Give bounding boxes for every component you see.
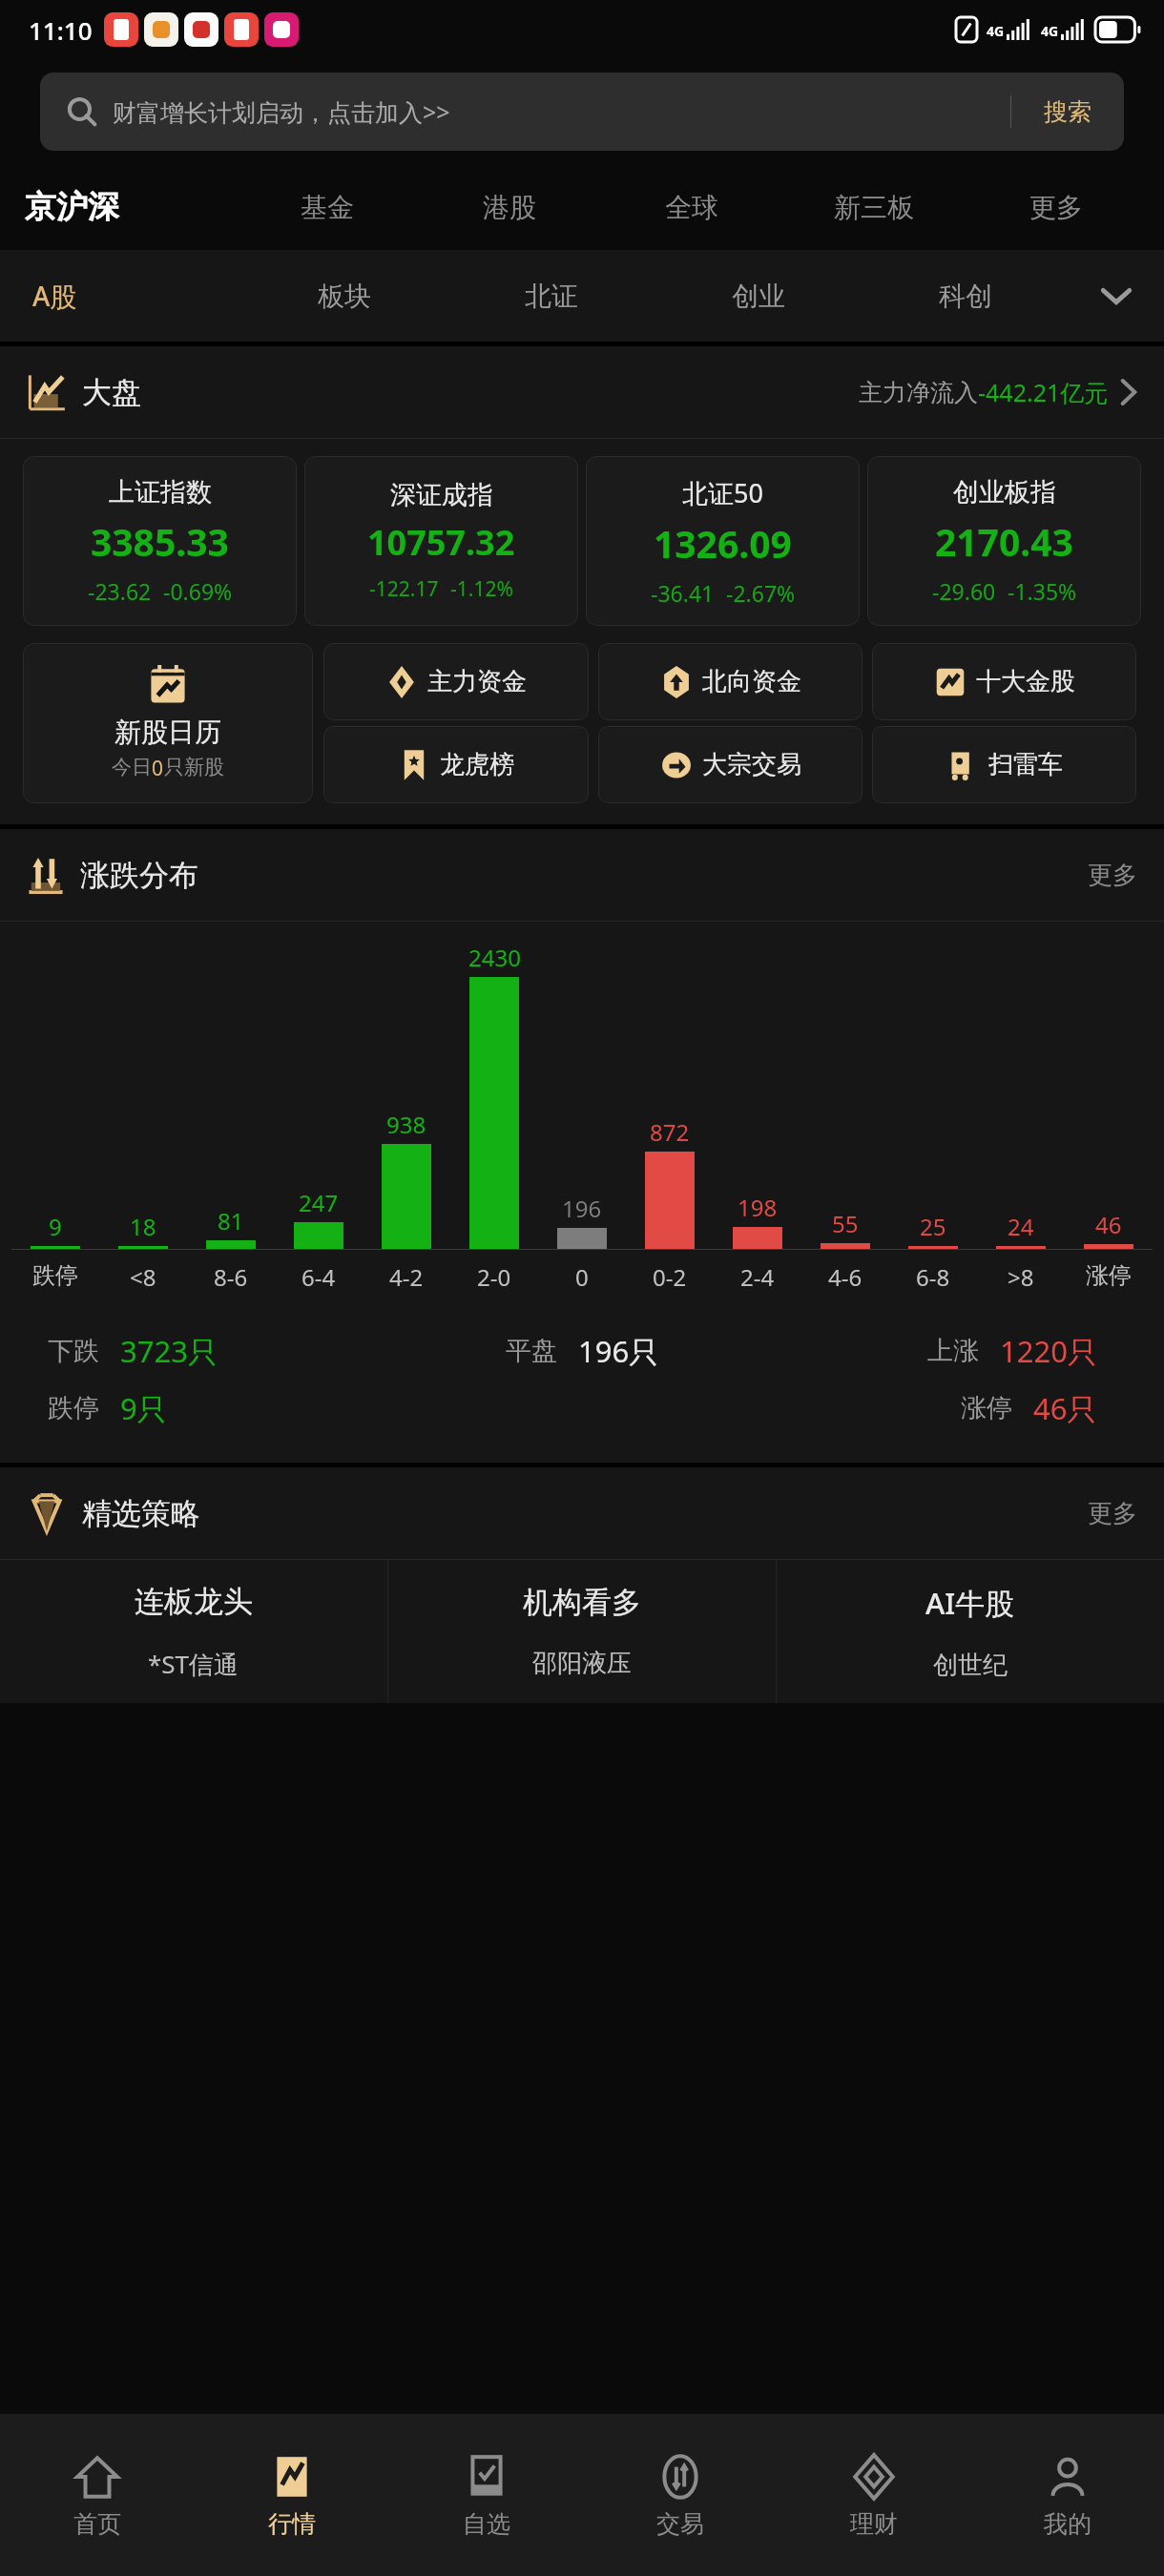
staticText: 涨停 (1086, 1261, 1132, 1290)
staticText: 全球 (665, 191, 718, 224)
staticText: 2170.43 (935, 516, 1073, 567)
staticText: 196只 (578, 1331, 659, 1371)
staticText: 25 (920, 1211, 946, 1242)
button[interactable]: 涨跌分布 (27, 829, 1137, 921)
button[interactable]: 京沪深 (25, 164, 236, 250)
staticText: 京沪深 (25, 187, 119, 227)
button[interactable]: 北证50 (586, 456, 860, 626)
button[interactable]: 创业 (655, 250, 862, 342)
staticText: 创世纪 (933, 1650, 1008, 1681)
staticText: 9只 (120, 1388, 167, 1428)
staticText: 46 (1095, 1209, 1122, 1240)
button[interactable]: 基金 (236, 164, 418, 250)
staticText: 创业板指 (953, 476, 1056, 509)
button[interactable]: 港股 (418, 164, 600, 250)
staticText: 邵阳液压 (532, 1648, 632, 1679)
staticText: 搜索 (1044, 97, 1091, 127)
staticText: -1.12% (450, 575, 513, 603)
staticText: 跌停 (32, 1261, 78, 1290)
staticText: 938 (386, 1109, 426, 1140)
staticText: 196 (562, 1193, 602, 1224)
staticText: 55 (832, 1208, 859, 1239)
button[interactable]: 首页 (0, 2414, 195, 2576)
staticText: 北证50 (682, 475, 763, 510)
staticText: 北向资金 (702, 666, 801, 697)
button[interactable]: 大盘 (27, 346, 1137, 438)
button[interactable]: 北向资金 (598, 643, 863, 720)
button[interactable]: 行情 (195, 2414, 389, 2576)
staticText: *ST信通 (148, 1647, 239, 1681)
staticText: 首页 (73, 2509, 121, 2539)
button[interactable]: 机构看多 (388, 1560, 776, 1703)
staticText: 2-0 (477, 1261, 511, 1293)
staticText: 上证指数 (109, 476, 212, 509)
button[interactable]: 财富增长计划启动，点击加入>> (40, 73, 1124, 151)
button[interactable]: 北证 (447, 250, 655, 342)
staticText: 大盘 (82, 374, 141, 411)
staticText: -0.69% (163, 576, 233, 606)
button[interactable]: 全球 (600, 164, 782, 250)
staticText: 我的 (1044, 2509, 1091, 2539)
button[interactable]: 创业板指 (867, 456, 1141, 626)
button[interactable]: 新三板 (782, 164, 965, 250)
button[interactable]: 板块 (240, 250, 447, 342)
button[interactable]: 自选 (389, 2414, 583, 2576)
staticText: 只新股 (164, 755, 224, 779)
staticText: 跌停 (48, 1392, 99, 1424)
staticText: -122.17 (369, 575, 439, 603)
staticText: 自选 (463, 2509, 510, 2539)
staticText: -442.21亿元 (978, 376, 1109, 408)
staticText: 更多 (1088, 1498, 1137, 1529)
staticText: 更多 (1029, 191, 1083, 224)
staticText: 财富增长计划启动，点击加入>> (113, 95, 450, 128)
staticText: 基金 (301, 191, 354, 224)
staticText: 精选策略 (82, 1495, 200, 1532)
staticText: 3385.33 (91, 516, 229, 567)
staticText: 涨跌分布 (80, 857, 198, 894)
staticText: 0-2 (653, 1261, 687, 1293)
button[interactable]: 主力资金 (323, 643, 589, 720)
staticText: 8-6 (214, 1261, 248, 1293)
staticText: A股 (32, 278, 77, 314)
staticText: 4-6 (828, 1261, 863, 1293)
button[interactable]: 连板龙头 (0, 1560, 387, 1703)
button[interactable]: 十大金股 (872, 643, 1136, 720)
staticText: 6-8 (916, 1261, 950, 1293)
staticText: 扫雷车 (988, 749, 1063, 780)
staticText: 创业 (732, 280, 785, 313)
staticText: 今日 (112, 755, 152, 779)
staticText: 872 (650, 1116, 690, 1148)
staticText: 9 (49, 1211, 62, 1242)
staticText: 247 (299, 1187, 339, 1218)
button[interactable]: 科创 (862, 250, 1069, 342)
staticText: 涨停 (961, 1392, 1012, 1424)
button[interactable]: 我的 (970, 2414, 1164, 2576)
button[interactable]: 精选策略 (27, 1467, 1137, 1559)
staticText: 6-4 (301, 1261, 336, 1293)
staticText: 4-2 (389, 1261, 424, 1293)
button[interactable]: A股 (32, 250, 240, 342)
staticText: 交易 (656, 2509, 704, 2539)
button[interactable]: AI牛股 (777, 1560, 1164, 1703)
staticText: 下跌 (48, 1335, 99, 1367)
staticText: 主力资金 (427, 666, 527, 697)
button[interactable]: 交易 (583, 2414, 777, 2576)
button[interactable]: 理财 (777, 2414, 970, 2576)
button[interactable]: 更多 (965, 164, 1147, 250)
button[interactable]: 展开更多 (1069, 250, 1164, 342)
button[interactable]: 上证指数 (23, 456, 297, 626)
staticText: 行情 (268, 2509, 316, 2539)
button[interactable]: 新股日历 (23, 643, 313, 803)
staticText: 北证 (525, 280, 578, 313)
button[interactable]: 龙虎榜 (323, 726, 589, 803)
staticText: 龙虎榜 (440, 749, 514, 780)
button[interactable]: 大宗交易 (598, 726, 863, 803)
staticText: 科创 (939, 280, 992, 313)
staticText: 新三板 (834, 191, 914, 224)
button[interactable]: 深证成指 (304, 456, 578, 626)
staticText: >8 (1008, 1261, 1034, 1293)
staticText: 2-4 (740, 1261, 775, 1293)
staticText: 0 (152, 755, 164, 782)
button[interactable]: 扫雷车 (872, 726, 1136, 803)
staticText: 主力净流入 (859, 378, 978, 407)
